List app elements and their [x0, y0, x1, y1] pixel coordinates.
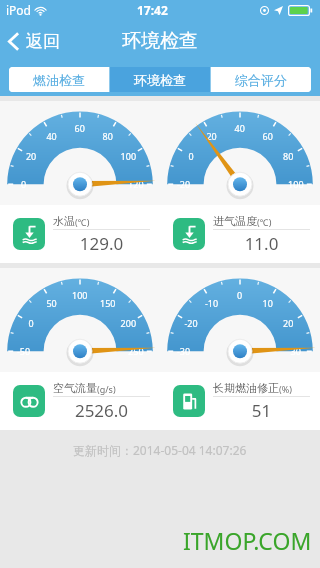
other: 水温: [13, 218, 45, 250]
button[interactable]: 燃油检查: [9, 67, 109, 92]
other: 进气温度: [173, 218, 205, 250]
staticText: 水温: [53, 214, 75, 228]
button[interactable]: 进气温度: [160, 205, 320, 263]
staticText: 51: [213, 399, 310, 422]
button[interactable]: 返回: [0, 25, 74, 58]
staticText: (℃): [257, 216, 272, 228]
staticText: 17:42: [137, 2, 168, 18]
staticText: (g/s): [97, 383, 116, 395]
staticText: 环境检查: [122, 29, 198, 53]
staticText: 2526.0: [53, 399, 150, 422]
button[interactable]: 长期燃油修正: [160, 372, 320, 430]
other: 空气流量: [13, 385, 45, 417]
staticText: 129.0: [53, 232, 150, 255]
other: 长期燃油修正: [173, 385, 205, 417]
staticText: iPod: [6, 2, 31, 18]
staticText: 空气流量: [53, 381, 97, 395]
staticText: ITMOP.COM: [183, 525, 312, 556]
staticText: (%): [279, 383, 292, 395]
staticText: (℃): [75, 216, 90, 228]
button[interactable]: 综合评分: [211, 67, 311, 92]
button[interactable]: 空气流量: [0, 372, 160, 430]
button[interactable]: 环境检查: [110, 67, 210, 92]
staticText: 更新时间：2014-05-04 14:07:26: [73, 442, 247, 458]
staticText: 燃油检查: [33, 72, 85, 88]
staticText: 进气温度: [213, 214, 257, 228]
staticText: 长期燃油修正: [213, 381, 279, 395]
staticText: 环境检查: [134, 72, 186, 88]
staticText: 综合评分: [235, 72, 287, 88]
button[interactable]: 水温: [0, 205, 160, 263]
staticText: 11.0: [213, 232, 310, 255]
staticText: 返回: [26, 31, 60, 52]
